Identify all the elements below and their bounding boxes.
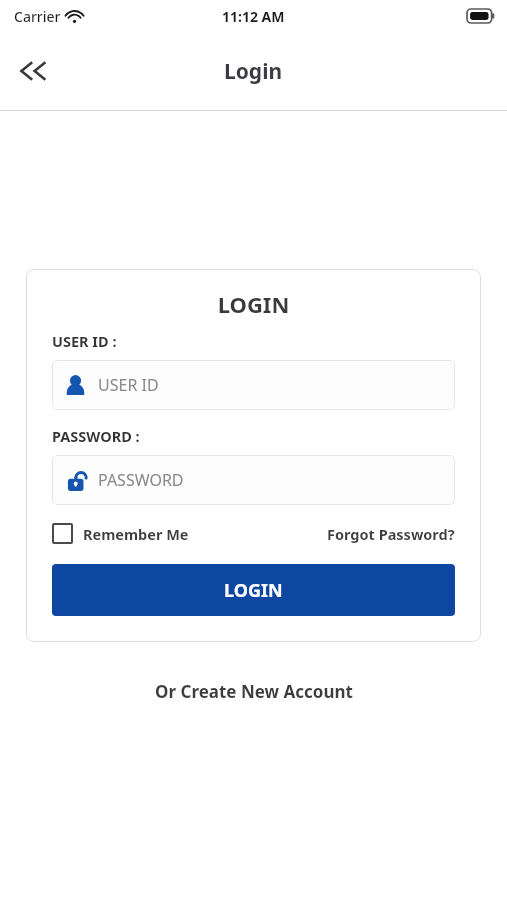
button[interactable]: PASSWORD [52,455,455,505]
staticText: LOGIN [224,578,283,603]
button[interactable]: LOGIN [52,564,455,616]
staticText: Or Create New Account [155,680,353,703]
staticText: 11:12 AM [222,7,285,26]
staticText: Carrier [14,7,61,26]
button[interactable]: USER ID [52,360,455,410]
staticText: LOGIN [52,289,455,319]
staticText: Remember Me [83,524,189,544]
button[interactable]: Remember Me [52,523,193,544]
button[interactable]: Back [8,45,60,97]
staticText: Login [224,57,283,86]
staticText: Forgot Password? [327,524,455,544]
staticText: PASSWORD [98,469,184,491]
staticText: USER ID [98,374,159,396]
staticText: PASSWORD : [52,426,140,446]
button[interactable]: Or Create New Account [0,680,507,703]
button[interactable]: Forgot Password? [327,524,455,544]
staticText: USER ID : [52,331,117,351]
